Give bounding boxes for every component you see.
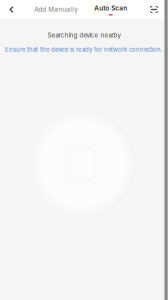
button[interactable]: Back	[0, 0, 23, 19]
button[interactable]: Auto Scan	[94, 0, 128, 19]
staticText: Auto Scan	[94, 4, 127, 12]
staticText: Searching device nearby	[47, 31, 120, 39]
staticText: Ensure that the device is ready for netw…	[5, 46, 163, 53]
button[interactable]: Scan QR code	[140, 0, 168, 19]
button[interactable]: Add Manually	[34, 0, 78, 19]
staticText: Add Manually	[34, 6, 78, 13]
